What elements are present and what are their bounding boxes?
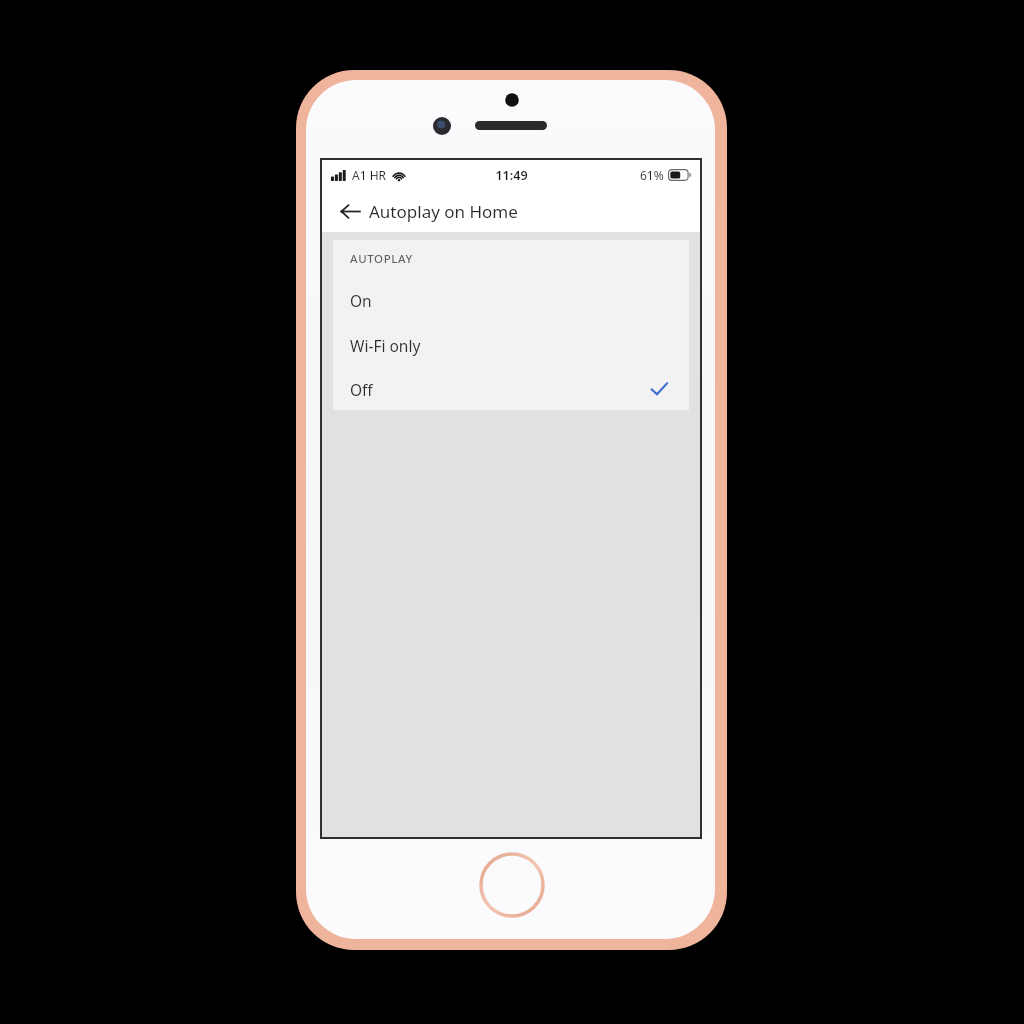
staticText: 11:49 — [495, 167, 528, 184]
button[interactable]: On — [333, 278, 689, 323]
staticText: Off — [350, 379, 649, 400]
staticText: A1 HR — [352, 167, 387, 183]
staticText: On — [350, 290, 649, 311]
staticText: 61% — [640, 167, 664, 183]
staticText: Wi-Fi only — [350, 335, 649, 356]
button[interactable]: Off — [333, 368, 689, 410]
button[interactable]: Wi-Fi only — [333, 323, 689, 368]
staticText: AUTOPLAY — [350, 251, 413, 267]
other: Home — [478, 851, 546, 919]
button[interactable]: Back — [334, 195, 366, 227]
staticText: Autoplay on Home — [369, 200, 518, 223]
